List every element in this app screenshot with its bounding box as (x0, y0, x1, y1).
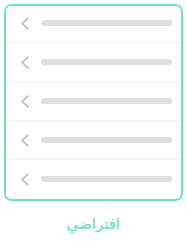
button[interactable]: Open item 1 (4, 4, 183, 42)
button[interactable]: Open item 4 (4, 121, 183, 159)
other: Open item 1 (20, 17, 30, 30)
other: Open item 4 (20, 134, 30, 147)
button[interactable]: Open item 2 (4, 43, 183, 81)
other: Open item 5 (20, 173, 30, 186)
other: Open item 2 (20, 56, 30, 69)
button[interactable]: Open item 3 (4, 82, 183, 120)
other: Open item 3 (20, 95, 30, 108)
staticText: افتراضي (0, 215, 187, 232)
button[interactable]: Open item 5 (4, 160, 183, 198)
